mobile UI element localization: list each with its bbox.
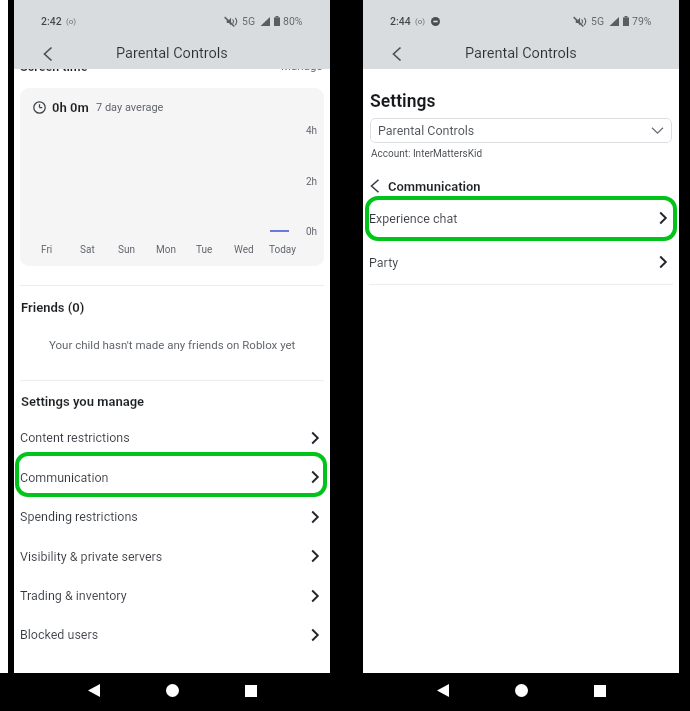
staticText: Wed (234, 244, 254, 256)
button[interactable]: Back (75, 672, 112, 709)
staticText: 2h (306, 176, 318, 188)
staticText: Parental Controls (465, 45, 577, 62)
staticText: Settings (370, 91, 436, 112)
staticText: Sun (118, 244, 135, 256)
button[interactable]: Parental Controls (370, 118, 672, 143)
staticText: Experience chat (369, 211, 458, 226)
staticText: Fri (41, 244, 53, 256)
staticText: Parental Controls (116, 45, 228, 62)
staticText: 2:44 (390, 15, 411, 27)
staticText: Your child hasn't made any friends on Ro… (49, 338, 296, 351)
staticText: Blocked users (20, 627, 99, 642)
staticText: 0h 0m (52, 100, 89, 115)
staticText: Manage (281, 59, 323, 72)
staticText: Content restrictions (20, 430, 130, 445)
button[interactable]: Communication (14, 457, 330, 497)
button[interactable]: Content restrictions (14, 418, 330, 457)
button[interactable]: Back (424, 672, 461, 709)
button[interactable]: Back (365, 176, 385, 196)
staticText: Parental Controls (378, 123, 475, 138)
button[interactable]: Spending restrictions (14, 497, 330, 536)
button[interactable]: Blocked users (14, 615, 330, 654)
button[interactable]: Home (154, 672, 191, 709)
staticText: Party (369, 255, 399, 270)
staticText: Tue (196, 244, 213, 256)
staticText: Trading & inventory (20, 588, 127, 603)
button[interactable]: Party (363, 240, 679, 284)
staticText: Spending restrictions (20, 509, 138, 524)
button[interactable]: Visibility & private servers (14, 536, 330, 576)
button[interactable]: Home (503, 672, 540, 709)
button[interactable]: Recent apps (581, 672, 618, 709)
staticText: Communication (20, 470, 109, 485)
staticText: 5G (242, 15, 256, 27)
staticText: Screen time (20, 59, 88, 74)
button[interactable]: Back (380, 38, 413, 69)
button[interactable]: Back (31, 38, 64, 69)
staticText: Visibility & private servers (20, 549, 163, 564)
staticText: (o) (66, 17, 77, 26)
staticText: Today (269, 244, 296, 256)
staticText: 5G (591, 15, 605, 27)
staticText: 79% (632, 15, 652, 27)
button[interactable]: Experience chat (363, 196, 679, 240)
staticText: Communication (388, 179, 481, 194)
staticText: Sat (80, 244, 95, 256)
staticText: 80% (283, 15, 303, 27)
staticText: 4h (306, 125, 318, 137)
button[interactable]: Trading & inventory (14, 576, 330, 615)
staticText: Settings you manage (21, 394, 145, 409)
staticText: 2:42 (41, 15, 62, 27)
staticText: Account: InterMattersKid (371, 148, 483, 160)
staticText: 7 day average (96, 101, 164, 114)
button[interactable]: Recent apps (232, 672, 269, 709)
staticText: 0h (306, 226, 318, 238)
staticText: (o) (415, 17, 426, 26)
staticText: Mon (156, 244, 176, 256)
staticText: Friends (0) (21, 300, 85, 315)
